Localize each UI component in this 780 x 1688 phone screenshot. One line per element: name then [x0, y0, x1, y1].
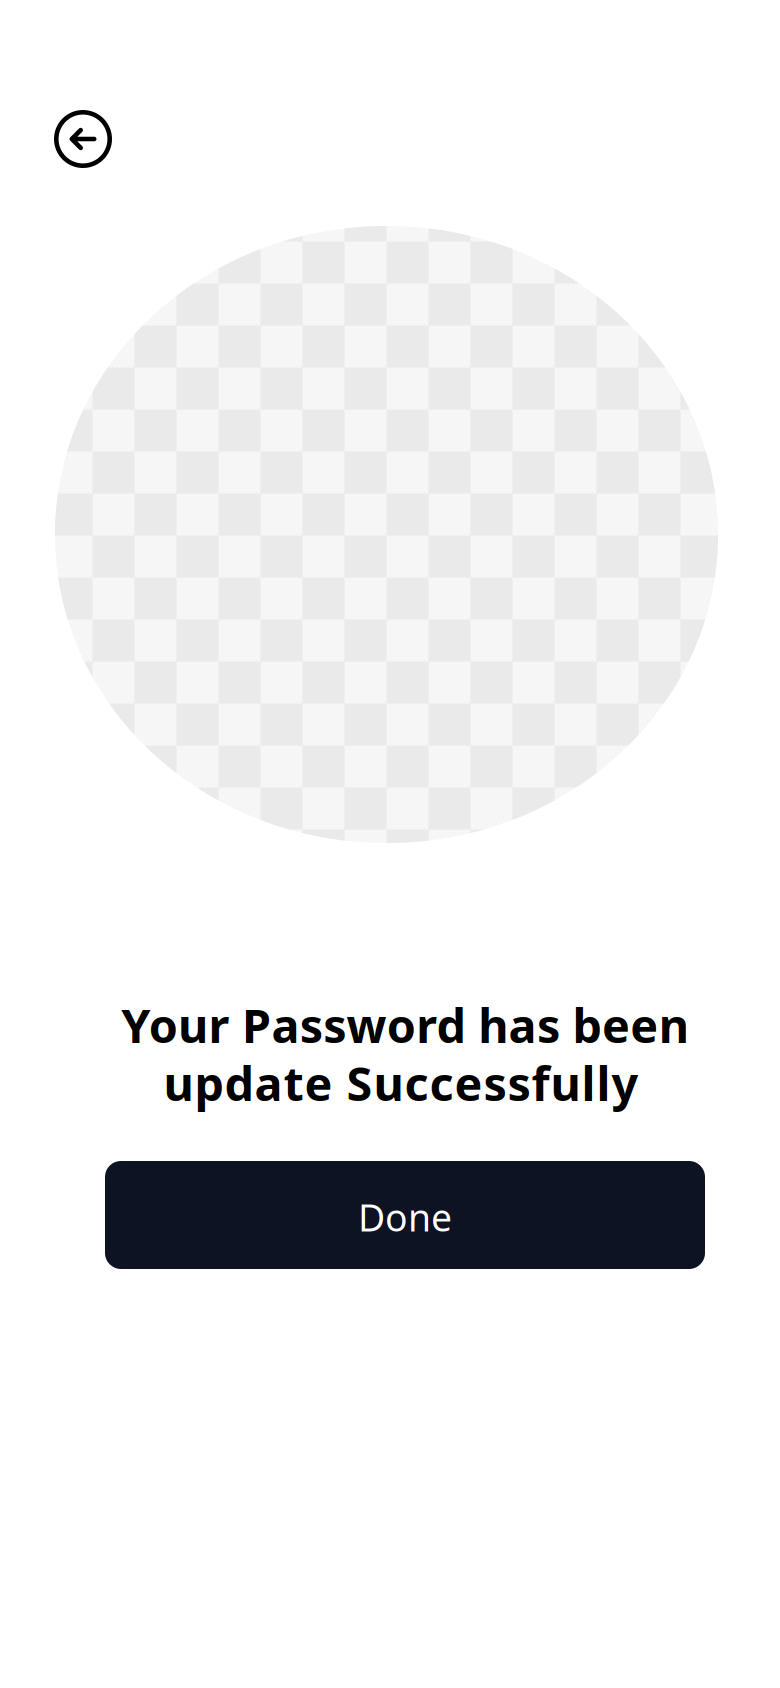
- button[interactable]: Done: [105, 1161, 705, 1269]
- staticText: Done: [358, 1192, 452, 1242]
- staticText: update Successfully: [163, 1052, 638, 1114]
- button[interactable]: Back: [54, 110, 112, 168]
- staticText: Your Password has been: [121, 994, 689, 1056]
